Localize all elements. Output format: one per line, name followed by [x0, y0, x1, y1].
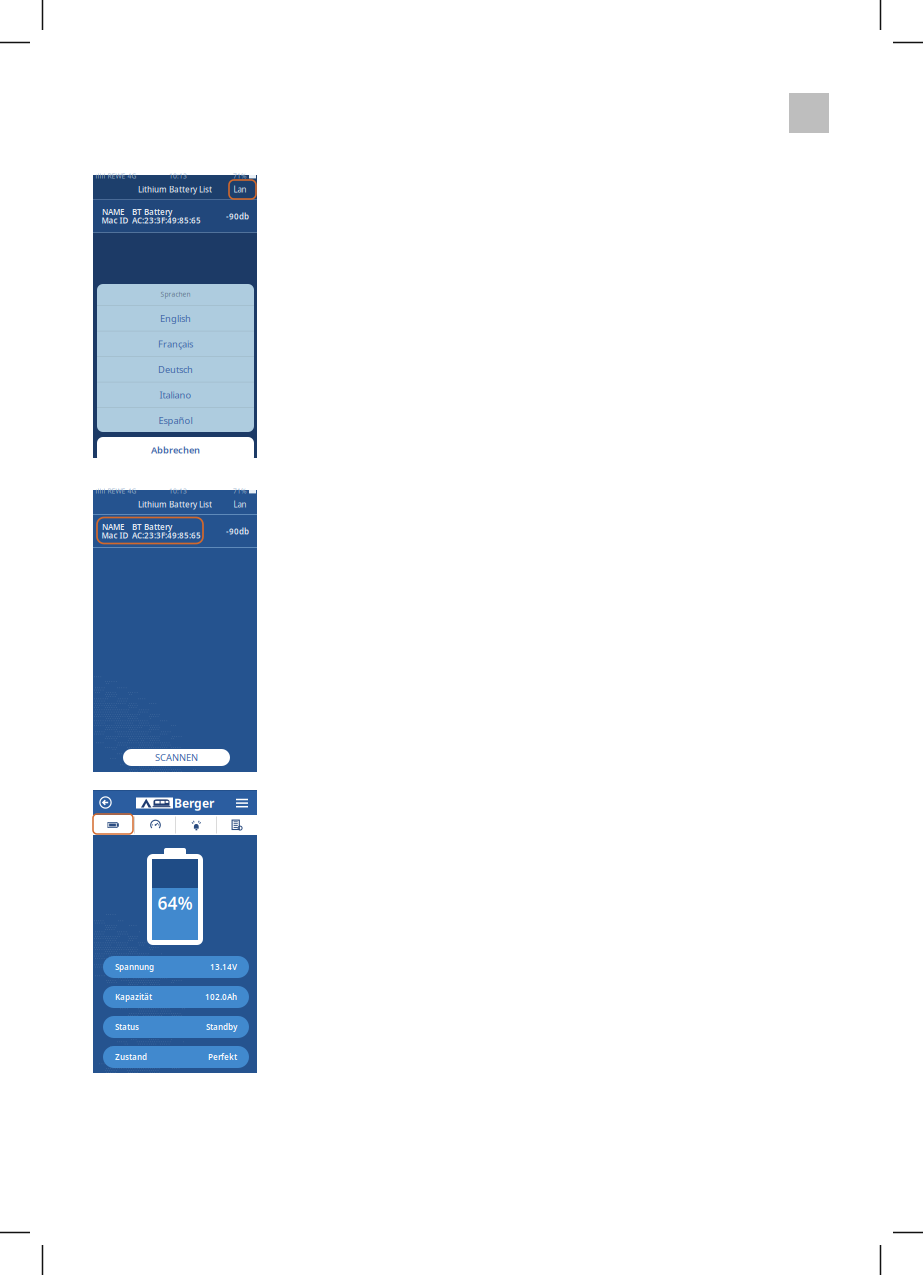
button[interactable]: Abbrechen: [97, 437, 254, 463]
staticText: 71%: [233, 171, 247, 180]
button[interactable]: Menu: [235, 798, 248, 808]
button[interactable]: Deutsch: [97, 357, 254, 382]
button[interactable]: Zustand: [103, 1046, 249, 1068]
staticText: Lithium Battery List: [138, 184, 212, 195]
button[interactable]: Battery status: [93, 815, 134, 835]
staticText: Perfekt: [208, 1052, 237, 1062]
staticText: Status: [115, 1022, 139, 1032]
staticText: Lan: [233, 184, 246, 195]
staticText: Español: [158, 414, 192, 427]
staticText: Abbrechen: [151, 444, 200, 456]
staticText: BT Battery: [132, 206, 172, 217]
staticText: Standby: [206, 1022, 237, 1032]
button[interactable]: Italiano: [97, 382, 254, 407]
staticText: 13.14V: [210, 962, 237, 972]
staticText: -90db: [226, 211, 249, 222]
staticText: Berger: [174, 795, 214, 811]
staticText: SCANNEN: [155, 751, 198, 764]
staticText: Lithium Battery List: [138, 499, 212, 510]
staticText: NAME: [102, 521, 124, 532]
button[interactable]: Lan: [227, 499, 253, 510]
staticText: Français: [158, 338, 193, 350]
staticText: Mac ID: [101, 530, 128, 541]
staticText: Spannung: [115, 962, 154, 972]
button[interactable]: SCANNEN: [123, 749, 230, 766]
staticText: Mac ID: [101, 215, 128, 226]
button[interactable]: English: [97, 306, 254, 331]
staticText: Deutsch: [158, 363, 193, 376]
button[interactable]: Español: [97, 408, 254, 433]
staticText: AC:23:3F:49:85:65: [132, 530, 201, 541]
staticText: ıllıl REWE 4G: [95, 171, 136, 180]
staticText: Kapazität: [115, 992, 152, 1002]
staticText: 102.0Ah: [205, 992, 237, 1002]
staticText: Lan: [233, 499, 246, 510]
button[interactable]: Kapazität: [103, 986, 249, 1008]
staticText: -90db: [226, 526, 249, 537]
staticText: 64%: [157, 891, 192, 914]
staticText: Zustand: [115, 1052, 147, 1062]
button[interactable]: Français: [97, 331, 254, 356]
button[interactable]: Status: [103, 1016, 249, 1038]
staticText: Italiano: [159, 389, 191, 401]
button[interactable]: Details: [217, 815, 257, 835]
button[interactable]: Gauge: [135, 815, 176, 835]
button[interactable]: Back: [99, 796, 112, 809]
button[interactable]: Lan: [227, 184, 253, 195]
staticText: 10:13: [169, 486, 187, 495]
staticText: AC:23:3F:49:85:65: [132, 215, 201, 226]
button[interactable]: Spannung: [103, 956, 249, 978]
staticText: 10:13: [169, 171, 187, 180]
staticText: ıllıl REWE 4G: [95, 486, 136, 495]
staticText: 71%: [233, 486, 247, 495]
staticText: Sprachen: [160, 290, 190, 299]
button[interactable]: Alarms: [176, 815, 217, 835]
staticText: NAME: [102, 206, 124, 217]
staticText: BT Battery: [132, 521, 172, 532]
staticText: English: [160, 312, 191, 325]
